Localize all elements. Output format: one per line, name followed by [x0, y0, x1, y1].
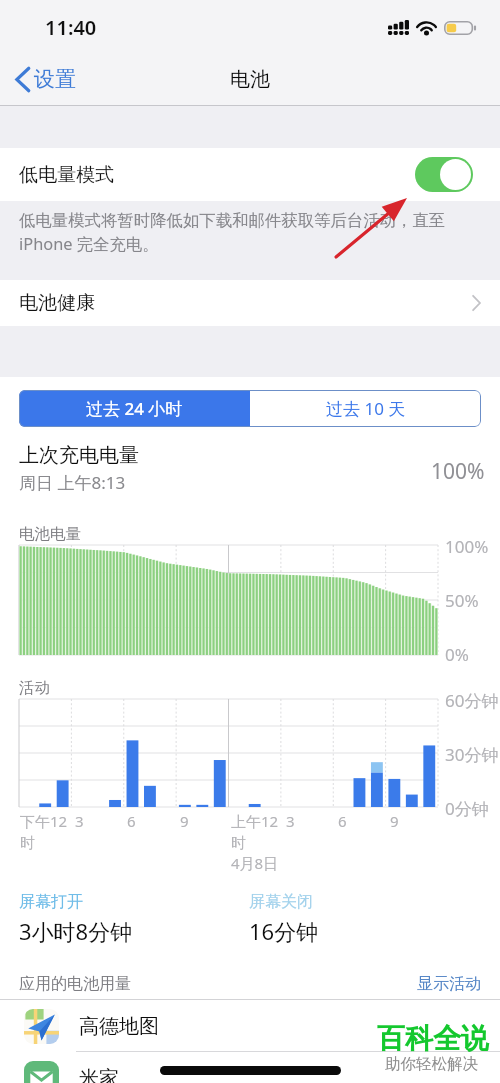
staticText: 30分钟: [445, 743, 499, 766]
staticText: 电池健康: [19, 291, 95, 315]
staticText: 16分钟: [249, 916, 319, 946]
staticText: 上午12 时 4月8日: [231, 811, 286, 874]
staticText: 9: [390, 811, 399, 831]
staticText: 100%: [431, 457, 485, 486]
staticText: 3小时8分钟: [19, 916, 133, 946]
button[interactable]: Low Power Mode toggle: [415, 157, 473, 192]
staticText: 活动: [19, 678, 50, 698]
button[interactable]: 过去 24 小时: [19, 390, 250, 427]
staticText: 屏幕关闭: [249, 892, 313, 912]
staticText: 米家: [79, 1066, 119, 1083]
staticText: 电池电量: [19, 524, 81, 544]
staticText: 周日 上午8:13: [19, 471, 126, 494]
staticText: 过去 10 天: [326, 397, 406, 420]
staticText: 60分钟: [445, 689, 499, 712]
staticText: 过去 24 小时: [86, 397, 183, 420]
staticText: 显示活动: [417, 974, 481, 994]
staticText: 设置: [34, 66, 76, 92]
staticText: 6: [338, 811, 347, 831]
staticText: 50%: [445, 589, 479, 612]
staticText: 高德地图: [79, 1014, 159, 1039]
staticText: 100%: [445, 535, 489, 558]
staticText: 低电量模式将暂时降低如下载和邮件获取等后台活动，直至 iPhone 完全充电。: [19, 210, 446, 255]
staticText: 0分钟: [445, 797, 489, 820]
staticText: 11:40: [45, 14, 97, 41]
button[interactable]: 米家: [0, 1052, 500, 1083]
button[interactable]: 低电量模式: [0, 148, 500, 201]
staticText: 6: [127, 811, 136, 831]
staticText: 助你轻松解决: [385, 1054, 478, 1074]
staticText: 电池: [230, 67, 270, 92]
button[interactable]: 电池健康: [0, 280, 500, 326]
staticText: 9: [180, 811, 189, 831]
staticText: 百科全说: [377, 1021, 489, 1056]
button[interactable]: 显示活动: [417, 974, 481, 994]
button[interactable]: 高德地图: [0, 1000, 500, 1052]
staticText: 下午12 时: [20, 811, 72, 852]
staticText: 屏幕打开: [19, 892, 83, 912]
button[interactable]: 设置: [0, 60, 86, 98]
staticText: 0%: [445, 643, 469, 666]
staticText: 应用的电池用量: [19, 974, 131, 994]
staticText: 低电量模式: [19, 163, 114, 187]
button[interactable]: 过去 10 天: [250, 390, 481, 427]
staticText: 上次充电电量: [19, 443, 139, 468]
staticText: 3: [286, 811, 295, 831]
staticText: 3: [75, 811, 84, 831]
